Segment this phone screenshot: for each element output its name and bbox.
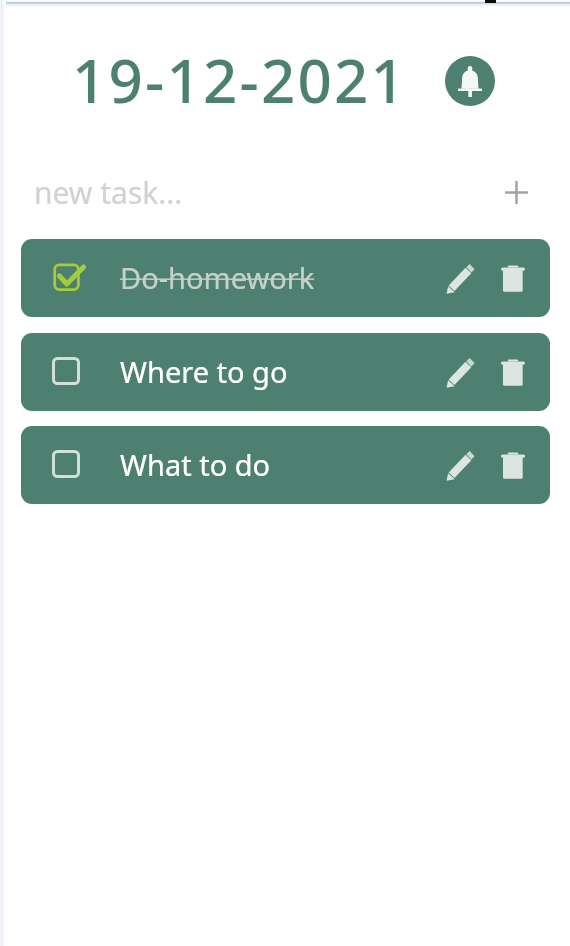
button[interactable]: Mark done	[21, 333, 550, 411]
button[interactable]: new task...	[21, 162, 550, 224]
button[interactable]: Mark done	[21, 426, 550, 504]
button[interactable]: Delete task	[493, 445, 533, 485]
button[interactable]: Add task	[494, 170, 538, 214]
staticText: Do-homework	[120, 258, 315, 297]
button[interactable]: Mark not done	[44, 256, 88, 300]
staticText: What to do	[120, 445, 271, 484]
button[interactable]: Delete task	[493, 258, 533, 298]
button[interactable]: Notifications	[445, 56, 495, 106]
staticText: Where to go	[120, 352, 288, 391]
button[interactable]: Edit task	[440, 353, 480, 393]
button[interactable]: Mark not done	[21, 239, 550, 317]
button[interactable]: Delete task	[493, 352, 533, 392]
staticText: 19-12-2021	[72, 39, 408, 121]
button[interactable]: Edit task	[440, 259, 480, 299]
button[interactable]: Mark done	[44, 350, 88, 394]
staticText: new task...	[34, 172, 183, 213]
button[interactable]: Edit task	[440, 446, 480, 486]
button[interactable]: Mark done	[44, 443, 88, 487]
